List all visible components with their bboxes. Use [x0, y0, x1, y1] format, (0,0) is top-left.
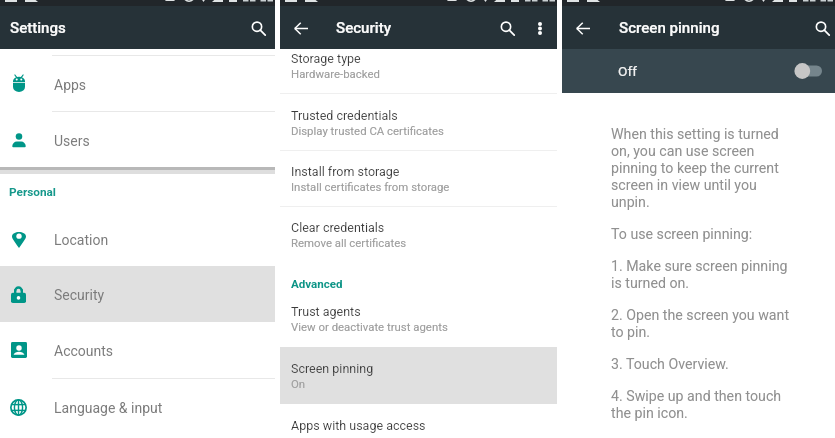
button[interactable]: Screen pinning	[280, 347, 557, 404]
button[interactable]: Search	[490, 11, 524, 45]
button[interactable]: Apps	[0, 56, 275, 111]
staticText: Screen pinning	[291, 361, 374, 376]
staticText: 2. Open the screen you want to pin.	[611, 307, 793, 341]
staticText: View or deactivate trust agents	[291, 320, 448, 333]
staticText: Language & input	[54, 400, 163, 416]
staticText: 3. Touch Overview.	[611, 356, 729, 373]
staticText: Install from storage	[291, 164, 400, 179]
staticText: Hardware-backed	[291, 67, 380, 80]
staticText: Clear credentials	[291, 220, 385, 235]
button[interactable]: Accounts	[0, 322, 275, 378]
staticText: When this setting is turned on, you can …	[611, 126, 793, 211]
staticText: 1. Make sure screen pinning is turned on…	[611, 258, 793, 292]
staticText: Storage type	[291, 51, 361, 66]
staticText: 4. Swipe up and then touch the pin icon.	[611, 388, 793, 422]
staticText: Security	[54, 287, 105, 303]
button[interactable]: Navigate up	[287, 14, 315, 42]
button[interactable]: Clear credentials	[280, 207, 557, 262]
button[interactable]: Location	[0, 211, 275, 266]
button[interactable]: Security	[0, 266, 275, 322]
staticText: Advanced	[291, 277, 343, 291]
staticText: Off	[618, 63, 637, 79]
staticText: Users	[54, 133, 90, 149]
staticText: To use screen pinning:	[611, 226, 753, 243]
staticText: On	[291, 377, 306, 390]
button[interactable]: Navigate up	[569, 14, 597, 42]
staticText: Screen pinning	[619, 19, 720, 37]
button[interactable]: Users	[0, 112, 275, 167]
button[interactable]: Search	[241, 11, 275, 45]
staticText: Personal	[9, 185, 56, 199]
button[interactable]: Apps with usage access	[280, 404, 557, 438]
staticText: Accounts	[54, 343, 114, 359]
staticText: Location	[54, 232, 109, 248]
staticText: Security	[336, 19, 392, 37]
staticText: Remove all certificates	[291, 236, 407, 249]
button[interactable]: Storage type	[280, 49, 557, 93]
button[interactable]: Trust agents	[280, 298, 557, 347]
staticText: Display trusted CA certificates	[291, 124, 444, 137]
staticText: Trust agents	[291, 304, 361, 319]
button[interactable]: Language & input	[0, 379, 275, 435]
staticText: Trusted credentials	[291, 108, 398, 123]
button[interactable]: Search	[805, 11, 835, 45]
button[interactable]: Install from storage	[280, 151, 557, 206]
button[interactable]: More options	[524, 13, 556, 43]
staticText: Apps	[54, 77, 87, 93]
staticText: Install certificates from storage	[291, 180, 450, 193]
button[interactable]: Screen pinning off	[562, 49, 835, 93]
staticText: Apps with usage access	[291, 418, 426, 433]
button[interactable]: Trusted credentials	[280, 94, 557, 150]
staticText: Settings	[10, 19, 66, 37]
